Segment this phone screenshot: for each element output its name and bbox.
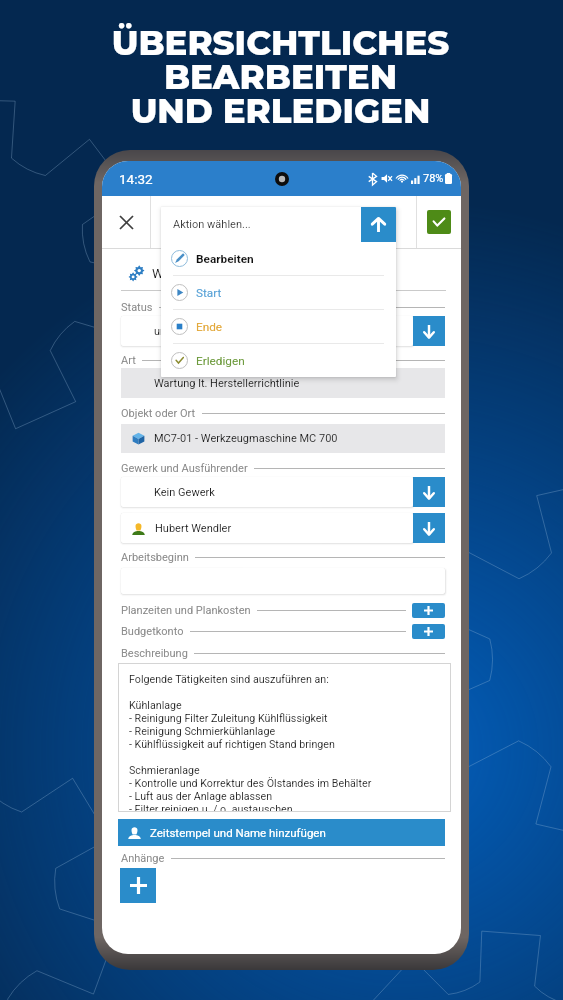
staticText: Schmieranlage [129,764,200,777]
staticText: - Kühlflüssigkeit auf richtigen Stand br… [129,738,335,751]
staticText: Gewerk und Ausführender [121,462,248,475]
staticText: Aktion wählen... [173,218,251,231]
staticText: Wartungsauftrag [152,266,250,281]
button[interactable]: Expand Hubert Wendler [413,513,445,543]
staticText: unbearbeitet [154,325,216,338]
button[interactable]: Close [102,196,150,248]
staticText: Start [196,286,222,300]
button[interactable]: Expand Kein Gewerk [413,477,445,507]
staticText: Status [121,301,153,314]
staticText: - Reinigung Filter Zuleitung Kühlflüssig… [129,712,328,725]
button[interactable]: Erledigen [161,344,396,377]
button[interactable]: Ende [161,310,396,343]
button[interactable]: Start [161,276,396,309]
staticText: Beschreibung [121,647,188,660]
staticText: Art [121,354,136,367]
staticText: - Kontrolle und Korrektur des Ölstandes … [129,777,372,790]
button[interactable]: Add Planzeiten und Plankosten [412,603,445,618]
button[interactable]: Bearbeiten [161,242,396,275]
button[interactable]: Zeitstempel und Name hinzufügen [118,819,445,846]
button[interactable]: Add Budgetkonto [412,624,445,639]
staticText: ÜBERSICHTLICHES BEARBEITEN UND ERLEDIGEN [0,22,562,131]
staticText: Kühlanlage [129,699,182,712]
staticText: - Luft aus der Anlage ablassen [129,790,273,803]
staticText: Ende [196,320,223,334]
staticText: Zeitstempel und Name hinzufügen [150,826,326,839]
staticText: Planzeiten und Plankosten [121,604,251,617]
staticText: Anhänge [121,852,165,865]
button[interactable]: Save [417,196,461,248]
staticText: 78% [423,172,444,185]
staticText: Erledigen [196,354,245,368]
staticText: Objekt oder Ort [121,407,196,420]
staticText: Bearbeiten [196,252,254,266]
staticText: Wartung lt. Herstellerrichtlinie [154,377,300,390]
button[interactable]: Expand unbearbeitet [413,316,445,346]
staticText: Folgende Tätigkeiten sind auszuführen an… [129,673,329,686]
staticText: Arbeitsbeginn [121,551,189,564]
staticText: MC7-01 - Werkzeugmaschine MC 700 [154,432,338,445]
button[interactable]: Add attachment [120,868,156,903]
button[interactable]: Aktion wählen... [161,207,396,242]
staticText: Hubert Wendler [155,522,232,535]
staticText: Kein Gewerk [154,486,215,499]
staticText: - Reinigung Schmierkühlanlage [129,725,276,738]
staticText: - Filter reinigen u. / o. austauschen [129,803,293,812]
staticText: Budgetkonto [121,625,184,638]
staticText: 14:32 [119,171,153,187]
